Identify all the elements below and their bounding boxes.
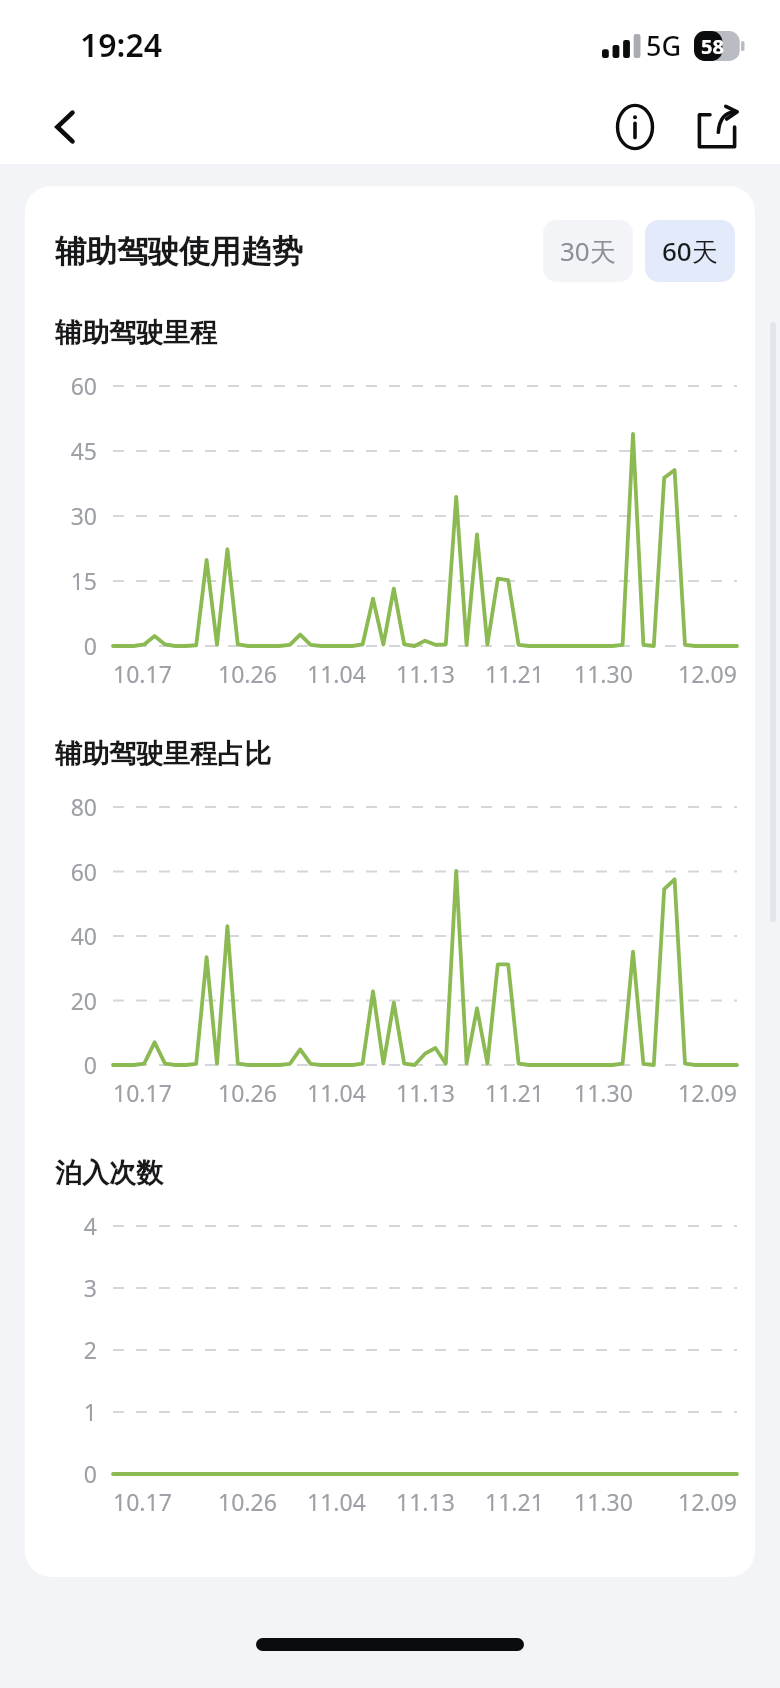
staticText: 19:24: [80, 23, 163, 67]
staticText: 11.04: [307, 658, 366, 689]
staticText: 11.21: [485, 1486, 544, 1517]
staticText: 30天: [560, 233, 616, 269]
staticText: 11.21: [485, 1077, 544, 1108]
staticText: 3: [51, 1272, 97, 1303]
staticText: 15: [51, 565, 97, 596]
staticText: 60天: [662, 233, 718, 269]
staticText: 11.30: [574, 658, 633, 689]
staticText: 5G: [646, 27, 682, 64]
staticText: 11.13: [396, 658, 455, 689]
staticText: 2: [51, 1334, 97, 1365]
staticText: 辅助驾驶使用趋势: [55, 232, 303, 271]
staticText: 辅助驾驶里程占比: [55, 737, 271, 771]
staticText: 1: [51, 1396, 97, 1427]
staticText: 10.26: [218, 658, 277, 689]
staticText: 11.04: [307, 1077, 366, 1108]
staticText: 40: [51, 920, 97, 951]
button[interactable]: 30天: [543, 220, 633, 282]
staticText: 11.30: [574, 1486, 633, 1517]
staticText: 10.26: [218, 1486, 277, 1517]
button[interactable]: 60天: [645, 220, 735, 282]
staticText: 10.26: [218, 1077, 277, 1108]
staticText: 辅助驾驶里程: [55, 316, 217, 350]
staticText: 12.09: [678, 1486, 737, 1517]
button[interactable]: Back: [34, 95, 98, 159]
staticText: 0: [51, 1049, 97, 1080]
staticText: 泊入次数: [55, 1156, 163, 1190]
staticText: 0: [51, 1458, 97, 1489]
staticText: 20: [51, 985, 97, 1016]
staticText: 11.13: [396, 1077, 455, 1108]
staticText: 4: [51, 1210, 97, 1241]
button[interactable]: Share: [684, 94, 750, 160]
staticText: 11.04: [307, 1486, 366, 1517]
staticText: 10.17: [113, 1077, 172, 1108]
staticText: 12.09: [678, 1077, 737, 1108]
staticText: 58: [701, 33, 724, 60]
staticText: 11.30: [574, 1077, 633, 1108]
staticText: 30: [51, 500, 97, 531]
button[interactable]: Info: [602, 94, 668, 160]
staticText: 11.13: [396, 1486, 455, 1517]
staticText: 10.17: [113, 1486, 172, 1517]
staticText: 60: [51, 370, 97, 401]
staticText: 11.21: [485, 658, 544, 689]
staticText: 60: [51, 856, 97, 887]
staticText: 45: [51, 435, 97, 466]
staticText: 12.09: [678, 658, 737, 689]
staticText: 10.17: [113, 658, 172, 689]
staticText: 0: [51, 630, 97, 661]
staticText: 80: [51, 791, 97, 822]
